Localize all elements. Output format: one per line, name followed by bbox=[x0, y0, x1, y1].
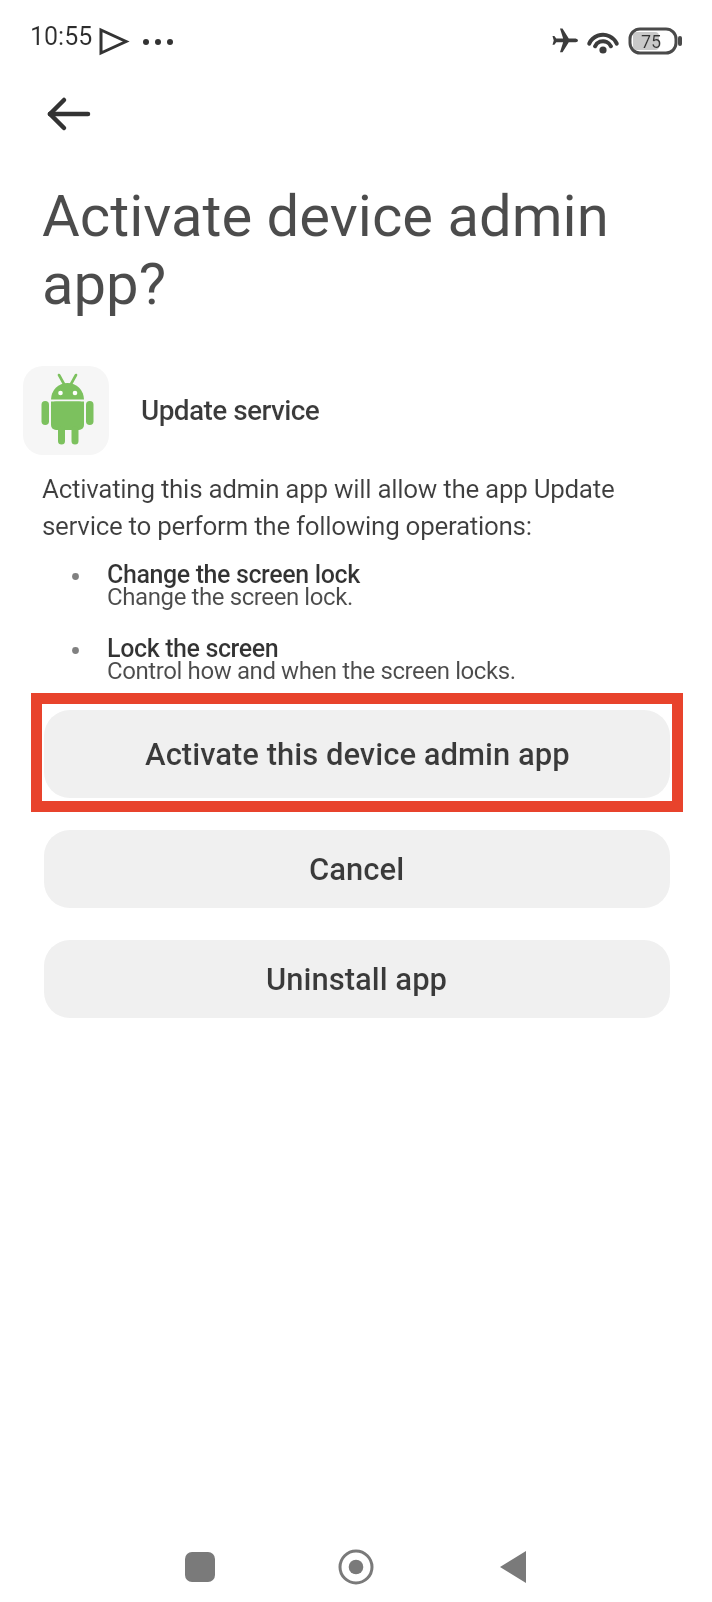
button[interactable] bbox=[34, 88, 90, 144]
button[interactable]: Cancel bbox=[44, 830, 670, 908]
staticText: Update service bbox=[141, 394, 320, 427]
staticText: Control how and when the screen locks. bbox=[107, 657, 516, 685]
staticText: Activate this device admin app bbox=[145, 736, 570, 772]
staticText: Cancel bbox=[309, 851, 405, 887]
button[interactable]: Uninstall app bbox=[44, 940, 670, 1018]
staticText: 75 bbox=[641, 31, 662, 52]
staticText: Change the screen lock. bbox=[107, 583, 353, 611]
staticText: 10:55 bbox=[30, 22, 93, 51]
button[interactable] bbox=[173, 1540, 227, 1594]
staticText: Lock the screen bbox=[107, 634, 279, 663]
staticText: Uninstall app bbox=[266, 961, 448, 997]
button[interactable] bbox=[486, 1540, 540, 1594]
button[interactable] bbox=[329, 1540, 383, 1594]
staticText: Activate device admin app? bbox=[42, 182, 609, 318]
button[interactable]: Activate this device admin app bbox=[44, 710, 670, 798]
staticText: Activating this admin app will allow the… bbox=[42, 474, 615, 541]
staticText: Change the screen lock bbox=[107, 560, 360, 589]
